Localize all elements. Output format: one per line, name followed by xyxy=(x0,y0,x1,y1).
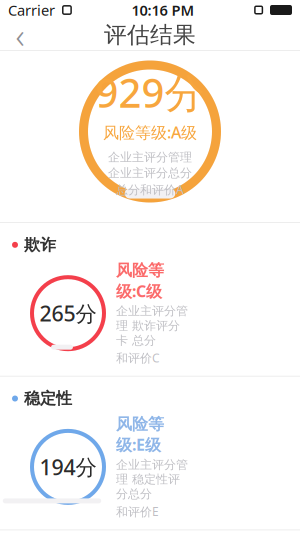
staticText: 929分 xyxy=(95,66,204,119)
button[interactable]: 欺诈 xyxy=(0,222,300,376)
button[interactable]: Back xyxy=(0,20,40,50)
staticText: 欺诈 xyxy=(24,235,56,255)
staticText: Carrier xyxy=(8,0,55,20)
button[interactable]: 还款能力 xyxy=(0,529,300,533)
staticText: 企业主评分管理 稳定性评分总分 xyxy=(116,457,188,501)
staticText: 10:16 PM xyxy=(132,0,195,20)
staticText: 194分 xyxy=(39,453,96,481)
staticText: 企业主评分管理 欺诈评分卡 总分 xyxy=(116,304,188,348)
staticText: 企业主评分总分 xyxy=(108,166,192,180)
staticText: 稳定性 xyxy=(24,389,72,408)
staticText: ‹ xyxy=(15,12,24,58)
staticText: 企业主评分管理 xyxy=(108,150,192,165)
staticText: 265分 xyxy=(39,299,96,327)
staticText: 和评价C xyxy=(116,350,160,366)
staticText: 风险等级:A级 xyxy=(103,122,197,143)
button[interactable]: 稳定性 xyxy=(0,376,300,529)
staticText: 总分和评价A xyxy=(116,181,184,197)
staticText: 评估结果 xyxy=(104,21,196,49)
staticText: 和评价E xyxy=(116,503,159,519)
staticText: 风险等级:C级 xyxy=(116,261,164,302)
staticText: 风险等级:E级 xyxy=(116,414,164,455)
